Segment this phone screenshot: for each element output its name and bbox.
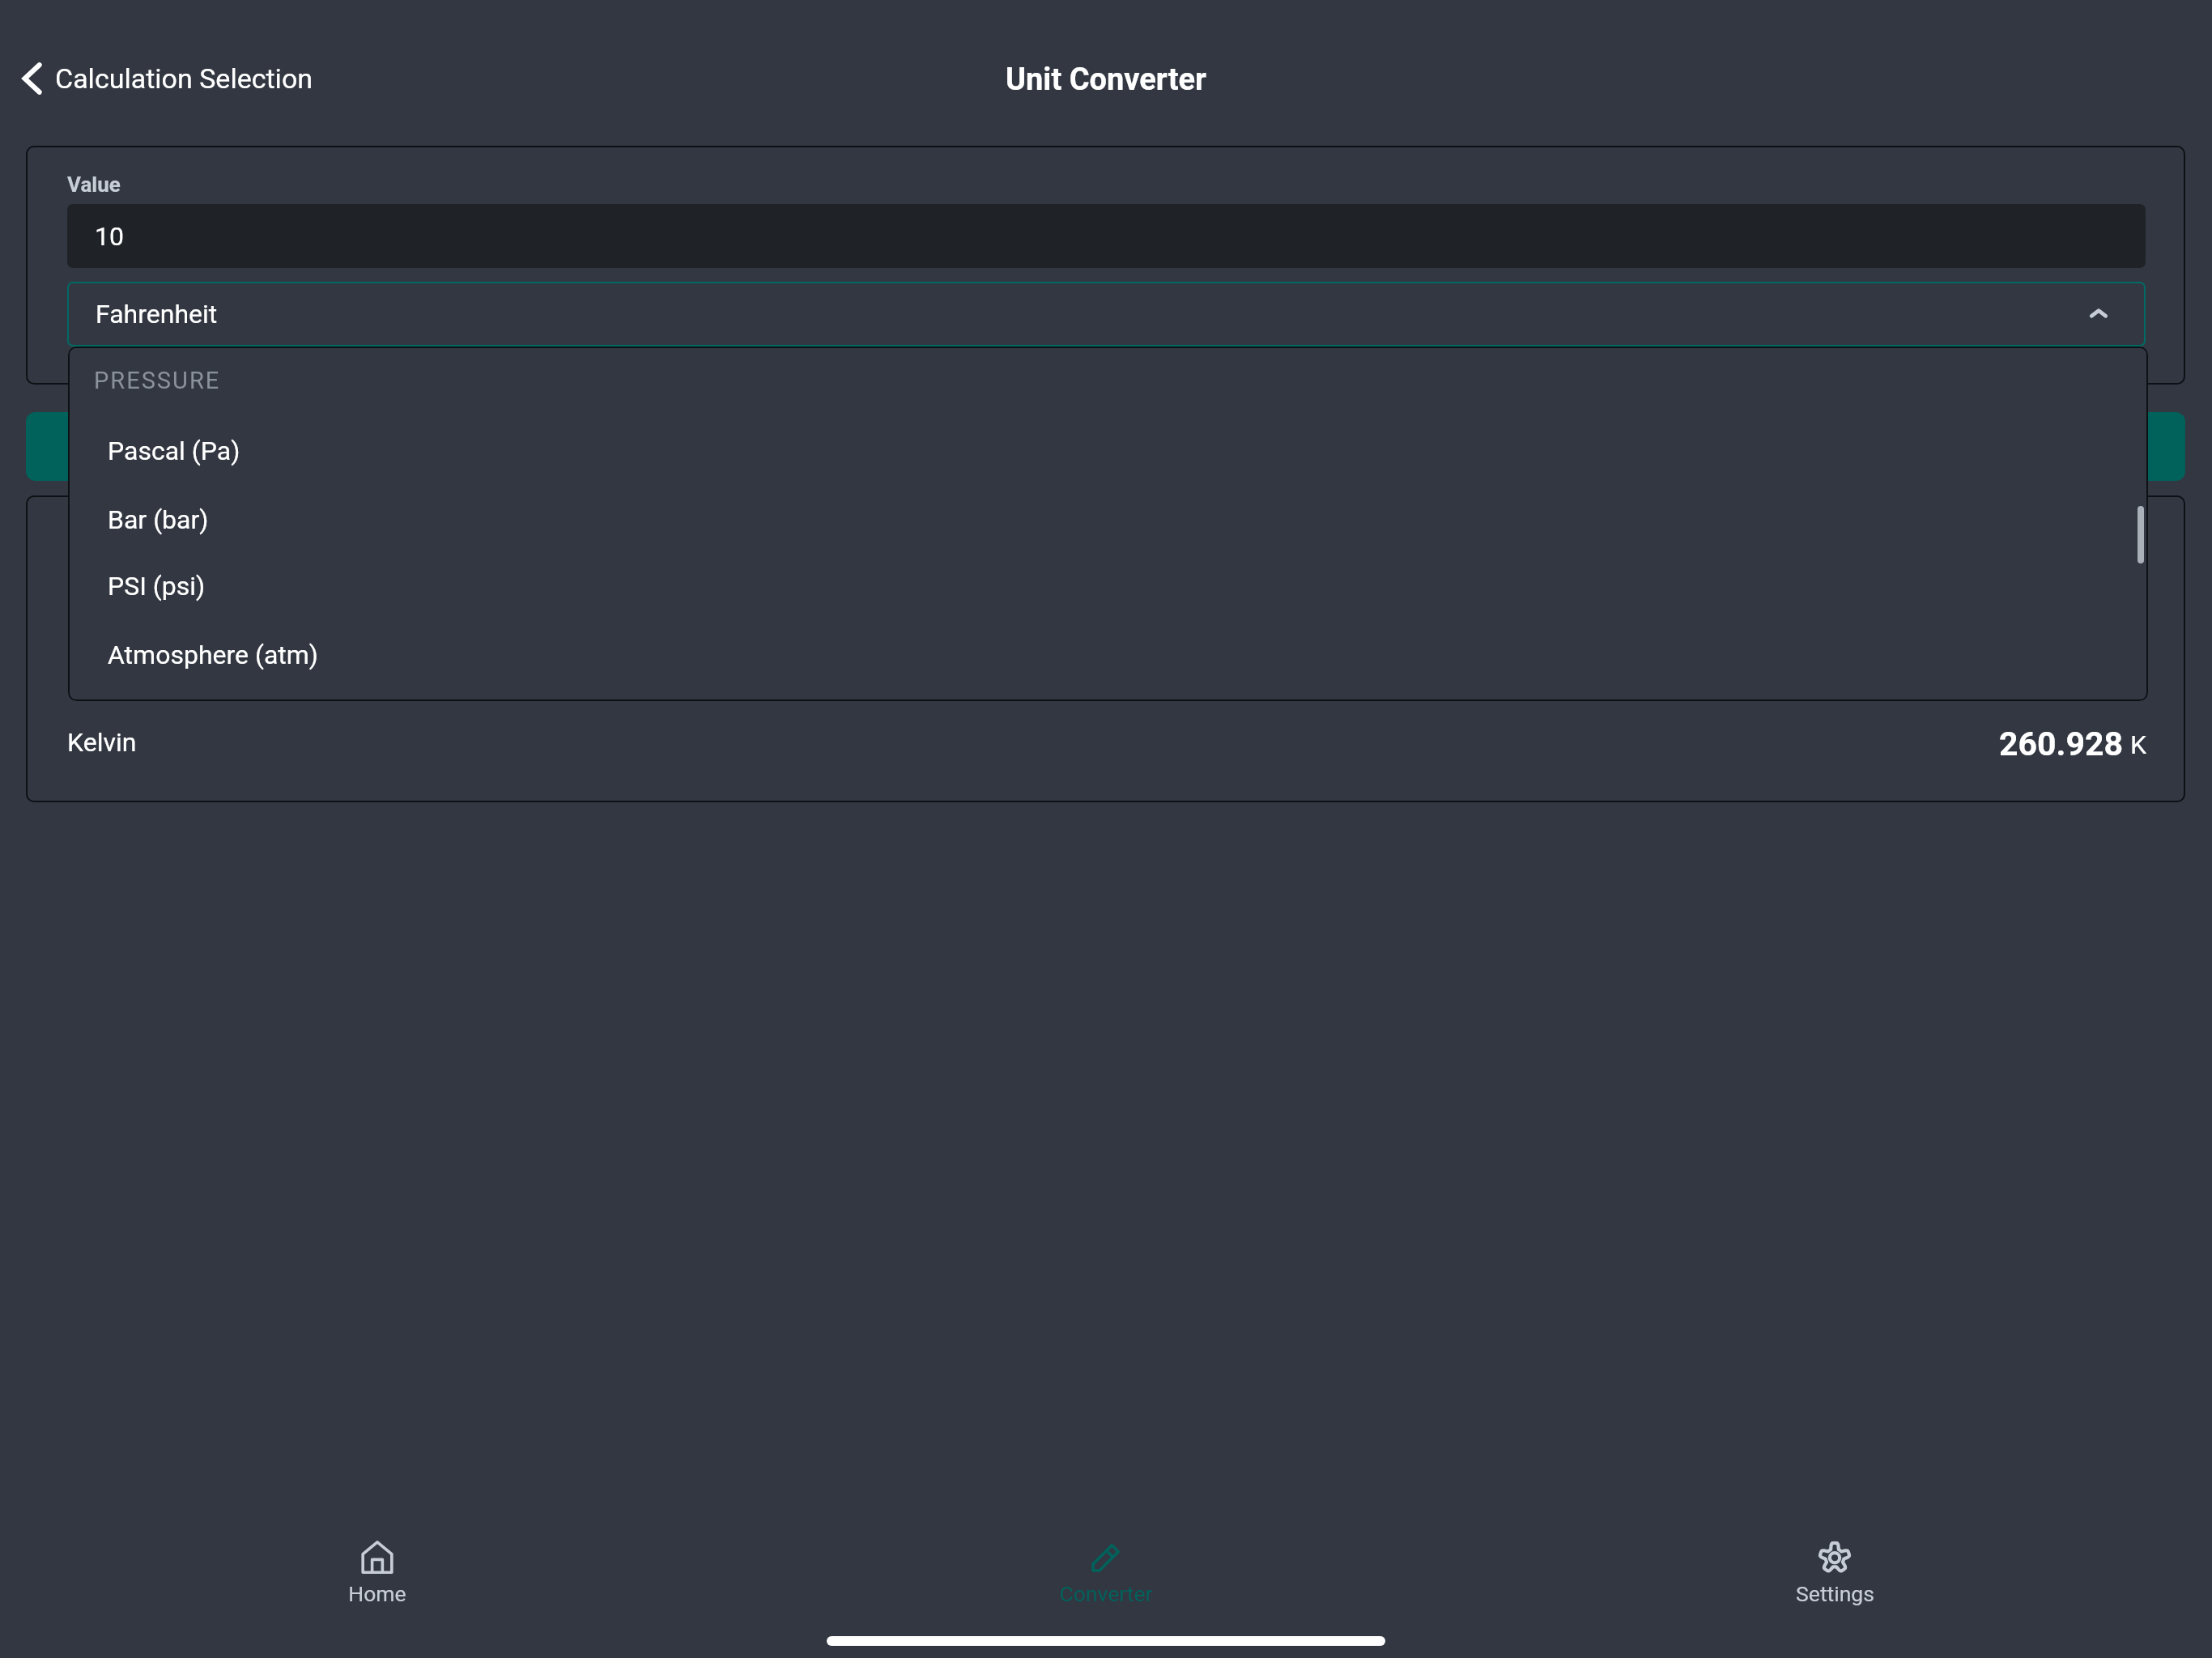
- staticText: Unit Converter: [1006, 62, 1206, 98]
- button[interactable]: Kelvin: [67, 716, 2146, 767]
- other: Collapse unit list: [2081, 296, 2116, 332]
- button[interactable]: Bar (bar): [68, 486, 2148, 554]
- staticText: Fahrenheit: [96, 299, 218, 329]
- staticText: 260.928: [1999, 725, 2124, 763]
- staticText: PSI (psi): [108, 571, 206, 602]
- other: Back: [15, 60, 52, 97]
- button[interactable]: Converter: [1017, 1540, 1195, 1606]
- staticText: 10: [95, 221, 124, 252]
- staticText: PRESSURE: [94, 367, 221, 394]
- staticText: Atmosphere (atm): [108, 640, 318, 670]
- staticText: Home: [348, 1581, 406, 1606]
- button[interactable]: Fahrenheit: [67, 282, 2146, 346]
- button[interactable]: Back: [15, 60, 313, 97]
- staticText: K: [2130, 729, 2147, 760]
- button[interactable]: Pascal (Pa): [68, 417, 2148, 485]
- staticText: Calculation Selection: [55, 62, 313, 95]
- staticText: Kelvin: [67, 727, 137, 758]
- staticText: Bar (bar): [108, 504, 209, 535]
- staticText: Value: [67, 172, 121, 197]
- button[interactable]: PSI (psi): [68, 552, 2148, 620]
- button[interactable]: Atmosphere (atm): [68, 621, 2148, 689]
- staticText: Converter: [1059, 1581, 1153, 1606]
- staticText: Pascal (Pa): [108, 436, 240, 466]
- staticText: Settings: [1796, 1581, 1874, 1606]
- button[interactable]: Settings: [1746, 1540, 1924, 1606]
- button[interactable]: [26, 412, 2185, 481]
- button[interactable]: 10: [67, 204, 2146, 268]
- button[interactable]: Home: [288, 1540, 466, 1606]
